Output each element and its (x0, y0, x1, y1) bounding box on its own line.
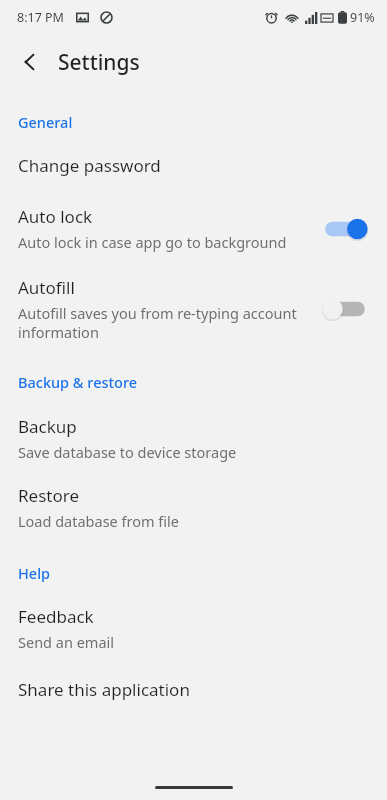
staticText: Share this application (18, 678, 190, 701)
staticText: Settings (58, 48, 140, 77)
button[interactable]: Restore (0, 484, 387, 531)
staticText: Feedback (18, 605, 94, 628)
button[interactable]: Back (8, 40, 52, 84)
staticText: Autofill (18, 276, 75, 299)
button[interactable]: Share this application (0, 678, 387, 701)
button[interactable]: Toggle on (319, 213, 371, 245)
staticText: Backup (18, 415, 77, 438)
button[interactable]: Feedback (0, 605, 387, 652)
button[interactable]: Backup (0, 415, 387, 462)
staticText: Load database from file (18, 511, 179, 531)
staticText: Auto lock (18, 205, 93, 228)
staticText: Restore (18, 484, 79, 507)
button[interactable]: Change password (0, 154, 387, 177)
staticText: Send an email (18, 632, 115, 652)
staticText: Auto lock in case app go to background (18, 232, 287, 252)
button[interactable]: Toggle off (319, 293, 371, 325)
staticText: Change password (18, 154, 161, 177)
staticText: 8:17 PM (17, 9, 64, 26)
button[interactable]: Auto lock (0, 205, 387, 252)
button[interactable]: Autofill (0, 276, 387, 342)
staticText: Autofill saves you from re-typing accoun… (18, 303, 307, 342)
staticText: Backup & restore (18, 372, 138, 392)
staticText: General (18, 112, 73, 132)
staticText: Help (18, 563, 51, 583)
staticText: 91% (350, 9, 375, 26)
staticText: Save database to device storage (18, 442, 237, 462)
